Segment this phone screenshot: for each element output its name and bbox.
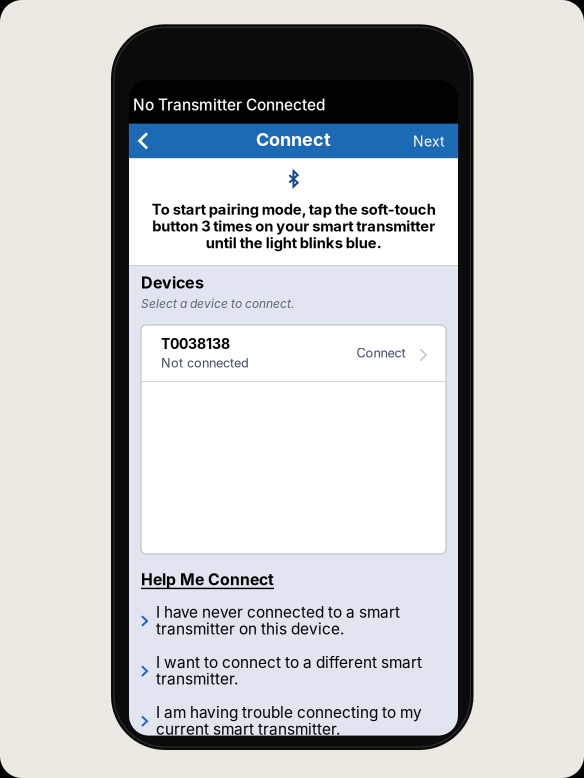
staticText: transmitter. bbox=[156, 670, 238, 688]
button[interactable]: Next bbox=[401, 124, 458, 158]
staticText: To start pairing mode, tap the soft-touc… bbox=[151, 201, 435, 218]
staticText: I am having trouble connecting to my bbox=[156, 703, 422, 722]
button[interactable]: I have never connected to a smart bbox=[141, 603, 446, 638]
button[interactable]: I want to connect to a different smart bbox=[141, 653, 446, 688]
button[interactable]: T0038138 bbox=[141, 325, 446, 382]
staticText: I have never connected to a smart bbox=[156, 603, 400, 622]
staticText: Not connected bbox=[161, 355, 249, 371]
button[interactable]: I am having trouble connecting to my bbox=[141, 703, 446, 738]
staticText: Select a device to connect. bbox=[141, 296, 294, 311]
staticText: button 3 times on your smart transmitter bbox=[152, 217, 435, 235]
staticText: Connect bbox=[256, 128, 331, 150]
staticText: I want to connect to a different smart bbox=[156, 653, 422, 672]
staticText: transmitter on this device. bbox=[156, 620, 344, 638]
staticText: T0038138 bbox=[161, 335, 230, 352]
staticText: until the light blinks blue. bbox=[205, 234, 381, 252]
staticText: Connect bbox=[356, 345, 405, 361]
staticText: Help Me Connect bbox=[141, 570, 274, 589]
staticText: current smart transmitter. bbox=[156, 720, 340, 738]
staticText: No Transmitter Connected bbox=[133, 96, 325, 114]
staticText: Devices bbox=[141, 273, 204, 292]
button[interactable]: Back bbox=[129, 124, 167, 158]
staticText: Next bbox=[413, 133, 445, 150]
